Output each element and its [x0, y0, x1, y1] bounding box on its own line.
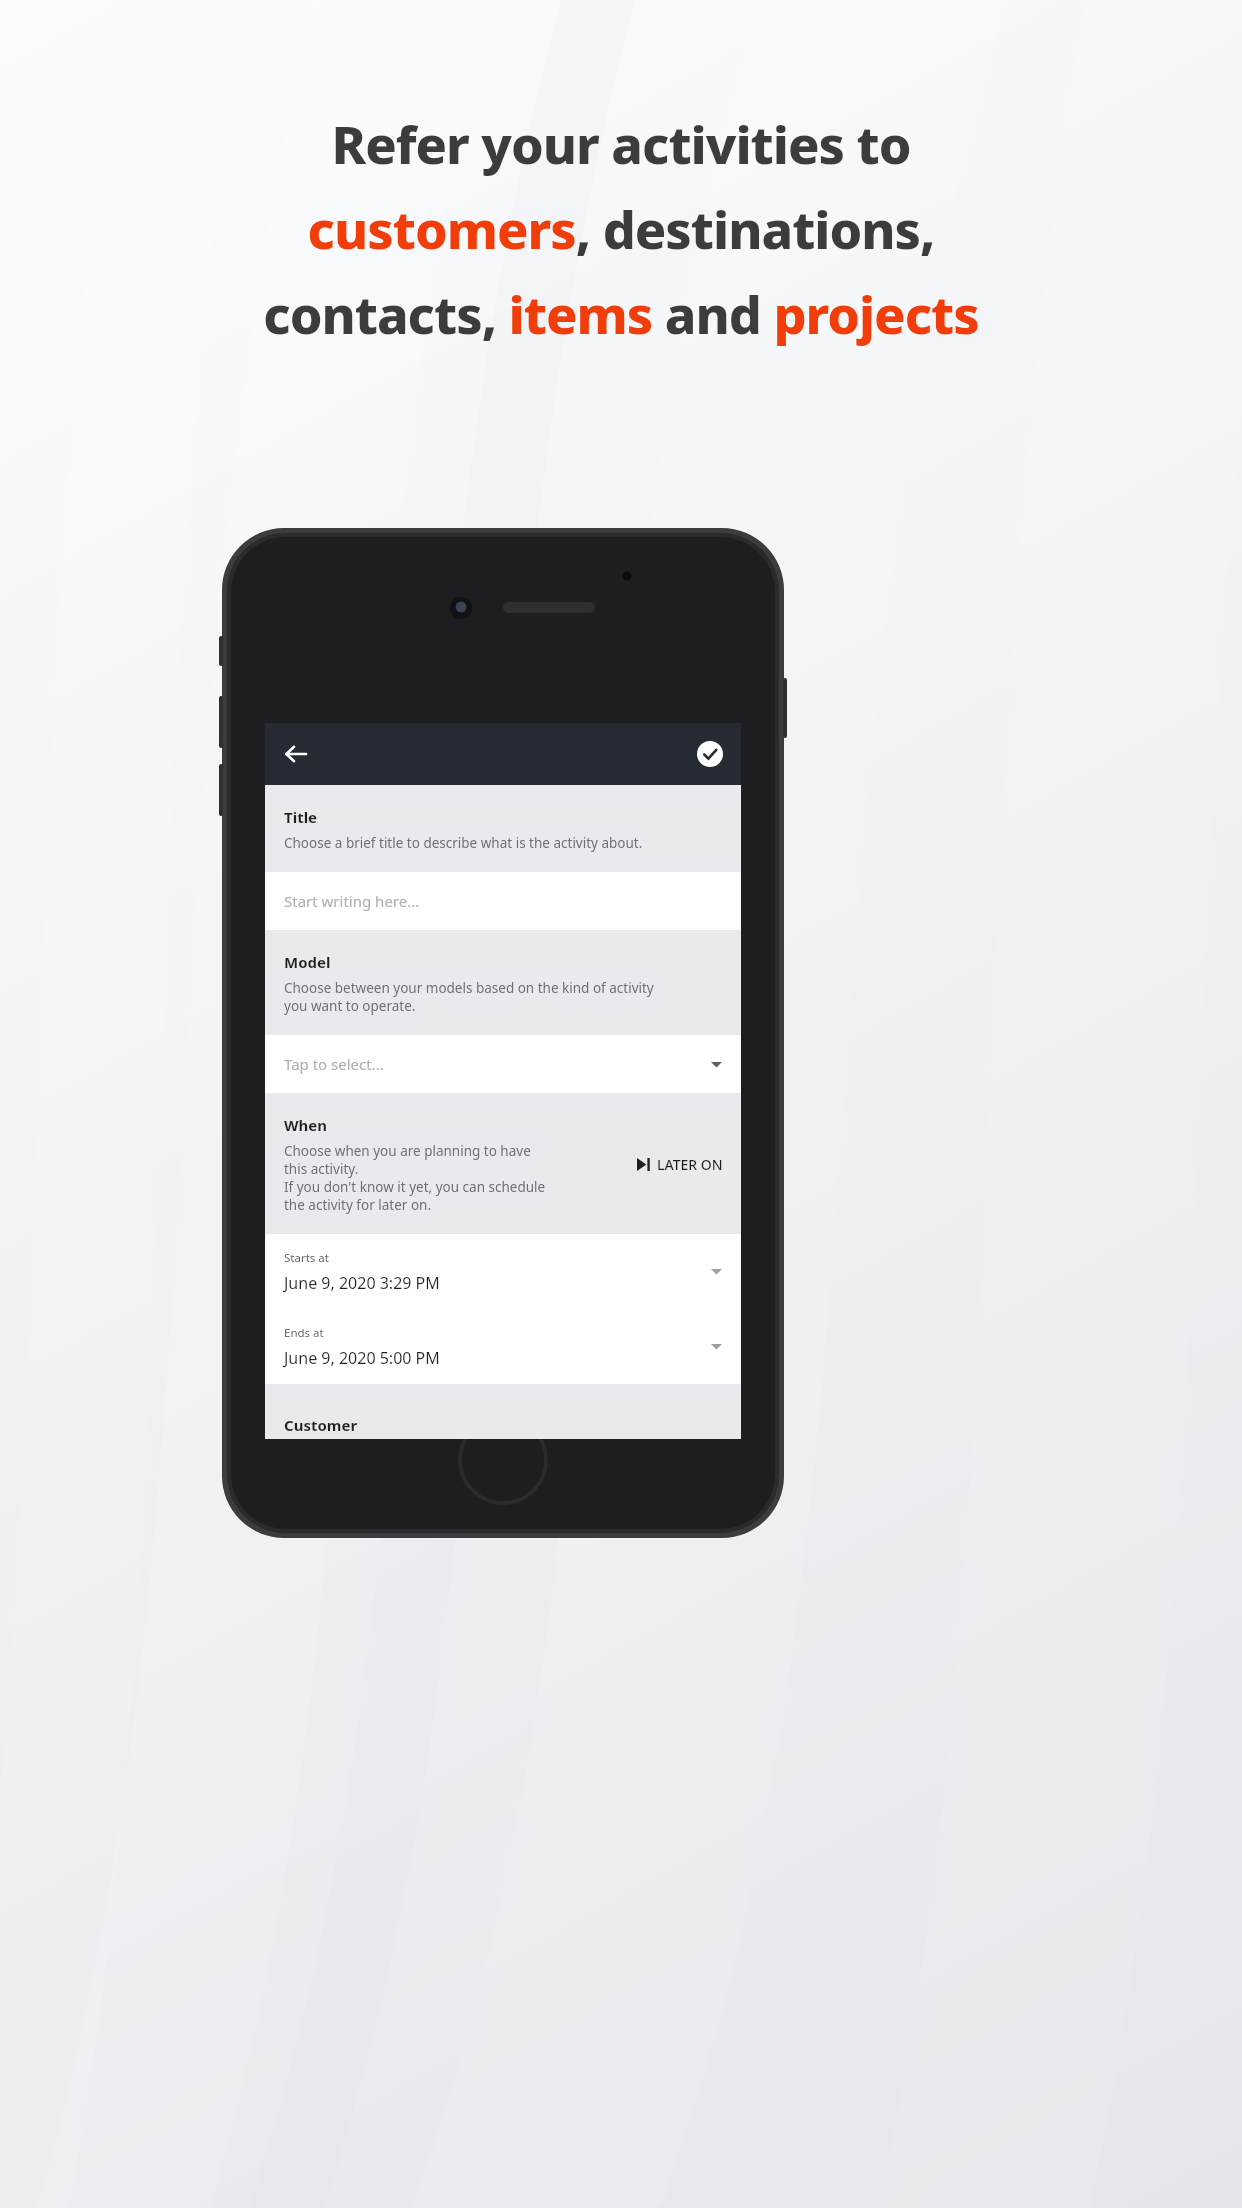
button[interactable]: Starts at	[265, 1234, 741, 1309]
staticText: the activity for later on.	[284, 1196, 432, 1214]
staticText: Choose between your models based on the …	[284, 979, 654, 997]
staticText: Starts at	[284, 1250, 329, 1266]
button[interactable]: LATER ON	[633, 1149, 727, 1180]
staticText: Choose when you are planning to have	[284, 1142, 531, 1160]
staticText: Model	[284, 952, 331, 972]
staticText: LATER ON	[657, 1155, 723, 1174]
staticText: June 9, 2020 3:29 PM	[284, 1272, 440, 1294]
staticText: Tap to select...	[284, 1054, 711, 1074]
staticText: Ends at	[284, 1325, 324, 1341]
staticText: If you don't know it yet, you can schedu…	[284, 1178, 546, 1196]
staticText: Refer your activities to	[36, 108, 1206, 179]
button[interactable]: Start writing here...	[265, 872, 741, 930]
staticText: Choose a brief title to describe what is…	[284, 834, 643, 852]
staticText: customers, destinations,	[36, 193, 1206, 264]
staticText: contacts, items and projects	[36, 278, 1206, 349]
staticText: Customer	[284, 1415, 358, 1435]
staticText: Title	[284, 807, 318, 827]
button[interactable]: Save	[689, 733, 731, 775]
staticText: this activity.	[284, 1160, 359, 1178]
button[interactable]: Tap to select...	[265, 1035, 741, 1093]
staticText: Start writing here...	[284, 891, 722, 911]
staticText: June 9, 2020 5:00 PM	[284, 1347, 440, 1369]
button[interactable]: Ends at	[265, 1309, 741, 1384]
staticText: you want to operate.	[284, 997, 416, 1015]
staticText: When	[284, 1115, 327, 1135]
button[interactable]: Back	[273, 731, 319, 777]
